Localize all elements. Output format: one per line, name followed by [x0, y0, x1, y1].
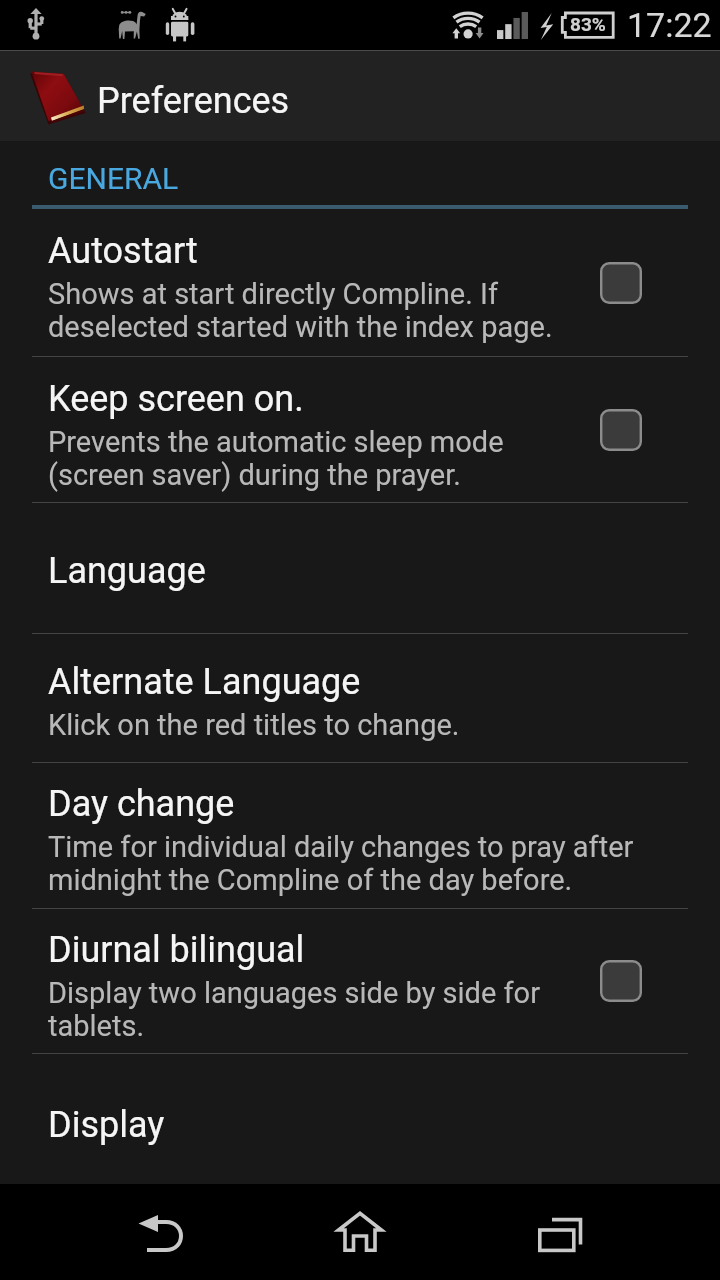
- button[interactable]: Recent apps: [480, 1184, 640, 1280]
- staticText: Autostart: [48, 230, 198, 272]
- staticText: Time for individual daily changes to pra…: [48, 830, 696, 897]
- button[interactable]: Autostart: [0, 209, 720, 356]
- staticText: Shows at start directly Compline. If des…: [48, 277, 594, 344]
- staticText: Keep screen on.: [48, 378, 304, 420]
- staticText: Diurnal bilingual: [48, 929, 305, 971]
- staticText: Alternate Language: [48, 661, 361, 703]
- staticText: 17:22: [627, 5, 712, 45]
- staticText: Display two languages side by side for t…: [48, 976, 594, 1043]
- button[interactable]: Day change: [0, 763, 720, 908]
- staticText: 83%: [570, 13, 606, 35]
- button[interactable]: Diurnal bilingual: [0, 909, 720, 1053]
- button[interactable]: Alternate Language: [0, 634, 720, 762]
- button[interactable]: Back: [80, 1184, 240, 1280]
- button[interactable]: Keep screen on.: [0, 357, 720, 502]
- button[interactable]: Home: [280, 1184, 440, 1280]
- staticText: Preferences: [97, 80, 290, 122]
- staticText: Language: [48, 550, 206, 592]
- staticText: Display: [48, 1104, 165, 1146]
- staticText: GENERAL: [48, 161, 179, 196]
- staticText: Prevents the automatic sleep mode (scree…: [48, 425, 594, 492]
- button[interactable]: Display: [0, 1054, 720, 1184]
- staticText: Day change: [48, 783, 235, 825]
- button[interactable]: Language: [0, 503, 720, 633]
- staticText: Klick on the red titles to change.: [48, 708, 460, 742]
